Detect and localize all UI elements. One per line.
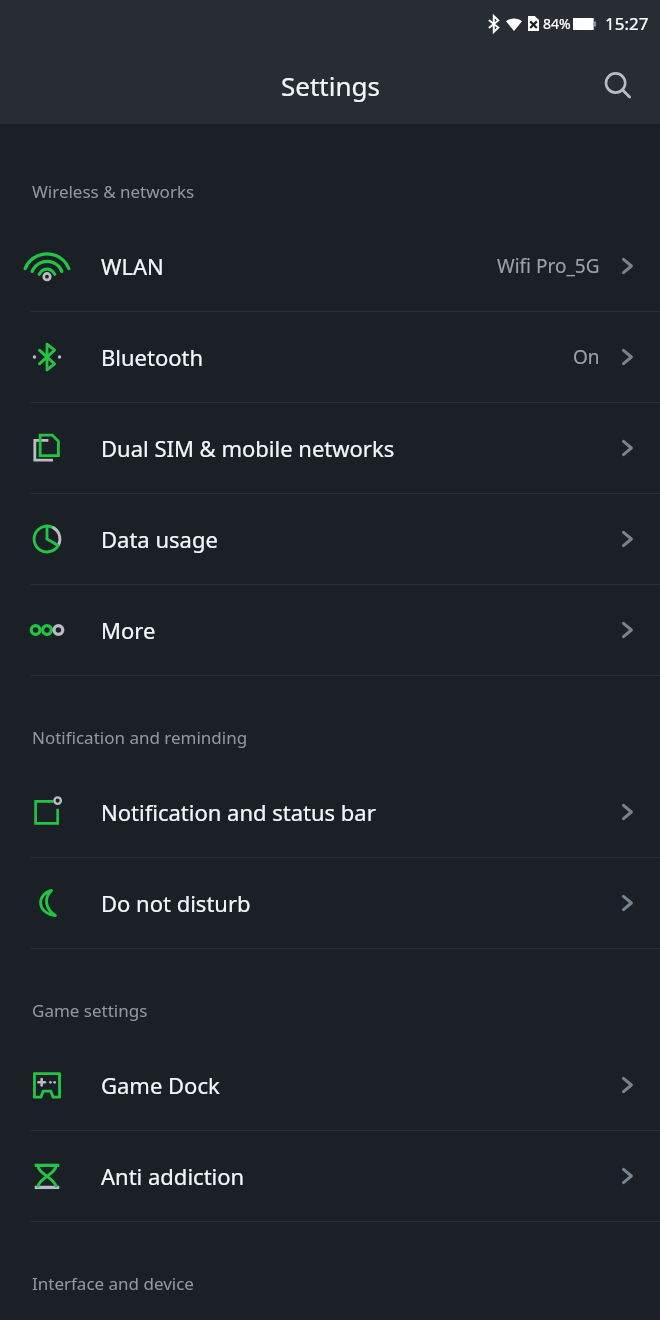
button[interactable]: Dual SIM & mobile networks	[0, 403, 660, 493]
staticText: 15:27	[605, 12, 649, 35]
staticText: WLAN	[101, 251, 164, 281]
staticText: More	[101, 615, 156, 645]
button[interactable]: WLAN	[0, 221, 660, 311]
staticText: Wifi Pro_5G	[497, 253, 600, 279]
staticText: Notification and reminding	[32, 726, 248, 749]
staticText: Notification and status bar	[101, 797, 376, 827]
staticText: Dual SIM & mobile networks	[101, 433, 395, 463]
staticText: On	[573, 344, 600, 370]
staticText: 84%	[543, 14, 571, 33]
button[interactable]: More	[0, 585, 660, 675]
button[interactable]: Data usage	[0, 494, 660, 584]
staticText: Interface and device	[32, 1272, 194, 1295]
staticText: Data usage	[101, 524, 218, 554]
button[interactable]: Search	[590, 58, 646, 114]
button[interactable]: Do not disturb	[0, 858, 660, 948]
button[interactable]: Game Dock	[0, 1040, 660, 1130]
staticText: Bluetooth	[101, 342, 204, 372]
staticText: Game settings	[32, 999, 148, 1022]
staticText: Do not disturb	[101, 888, 251, 918]
staticText: Game Dock	[101, 1070, 220, 1100]
staticText: Anti addiction	[101, 1161, 245, 1191]
button[interactable]: Bluetooth	[0, 312, 660, 402]
button[interactable]: Notification and status bar	[0, 767, 660, 857]
staticText: Wireless & networks	[32, 180, 195, 203]
staticText: Settings	[281, 68, 380, 103]
button[interactable]: Anti addiction	[0, 1131, 660, 1221]
